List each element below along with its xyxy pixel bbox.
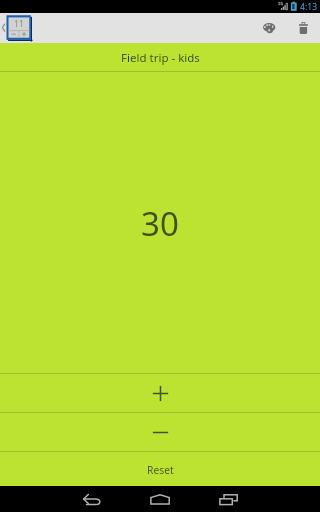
button[interactable]: Navigate up [0,13,34,43]
button[interactable]: Decrement [0,413,320,451]
staticText: 11 [14,18,24,29]
button[interactable]: Recent apps [204,486,252,512]
button[interactable]: Delete [286,13,320,43]
staticText: 4:13 [300,1,318,13]
button[interactable]: Change colour [252,13,286,43]
button[interactable]: Reset [0,452,320,486]
staticText: 30 [141,201,179,246]
button[interactable]: Increment [0,374,320,412]
button[interactable]: Back [68,486,116,512]
button[interactable]: Home [136,486,184,512]
button[interactable]: Field trip - kids [0,43,320,71]
staticText: Field trip - kids [121,50,200,66]
staticText: Reset [147,463,174,477]
